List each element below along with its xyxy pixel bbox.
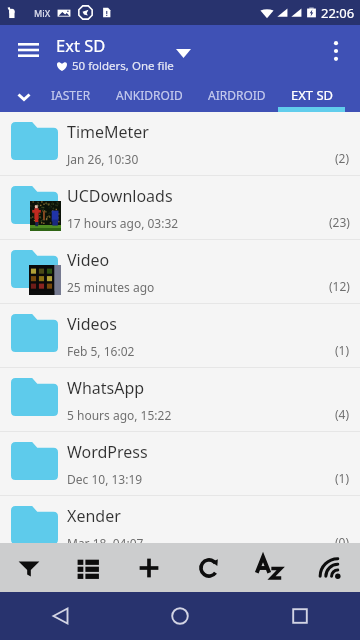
button[interactable]: More options bbox=[312, 25, 360, 77]
staticText: (1) bbox=[335, 342, 350, 358]
button[interactable]: Open navigation drawer bbox=[0, 25, 56, 77]
staticText: (1) bbox=[335, 470, 350, 486]
button[interactable]: Xender bbox=[0, 496, 360, 560]
staticText: WordPress bbox=[67, 441, 148, 463]
staticText: TimeMeter bbox=[67, 121, 149, 143]
button[interactable]: Sort bbox=[240, 543, 298, 592]
staticText: EXT SD bbox=[291, 86, 334, 104]
button[interactable]: UCDownloads bbox=[0, 176, 360, 240]
staticText: (23) bbox=[329, 214, 350, 230]
staticText: (2) bbox=[335, 150, 350, 166]
button[interactable]: EXT SD bbox=[291, 82, 334, 112]
staticText: (12) bbox=[329, 278, 350, 294]
staticText: Ext SD bbox=[56, 34, 106, 56]
staticText: Jan 26, 10:30 bbox=[67, 151, 139, 167]
staticText: (4) bbox=[335, 406, 350, 422]
button[interactable]: Recents bbox=[240, 592, 360, 640]
button[interactable]: New bbox=[120, 543, 178, 592]
staticText: MiX bbox=[34, 7, 51, 19]
button[interactable]: AIRDROID bbox=[208, 82, 266, 112]
staticText: AIRDROID bbox=[208, 87, 266, 103]
staticText: (0) bbox=[335, 534, 350, 550]
staticText: Videos bbox=[67, 313, 117, 335]
staticText: Video bbox=[67, 249, 110, 271]
staticText: 50 folders, One file bbox=[72, 58, 174, 74]
button[interactable]: Back bbox=[0, 592, 120, 640]
button[interactable]: WordPress bbox=[0, 432, 360, 496]
staticText: Mar 18, 04:07 bbox=[67, 535, 144, 551]
button[interactable]: IASTER bbox=[51, 82, 91, 112]
staticText: IASTER bbox=[51, 87, 91, 103]
staticText: 17 hours ago, 03:32 bbox=[67, 215, 179, 231]
button[interactable]: Refresh bbox=[180, 543, 238, 592]
button[interactable]: ANKIDROID bbox=[116, 82, 183, 112]
staticText: 25 minutes ago bbox=[67, 279, 155, 295]
staticText: Dec 10, 13:19 bbox=[67, 471, 143, 487]
button[interactable]: Video bbox=[0, 240, 360, 304]
staticText: UCDownloads bbox=[67, 185, 173, 207]
button[interactable]: Show all tabs bbox=[0, 82, 48, 112]
button[interactable]: Videos bbox=[0, 304, 360, 368]
button[interactable]: Home bbox=[120, 592, 240, 640]
staticText: Feb 5, 16:02 bbox=[67, 343, 135, 359]
staticText: 5 hours ago, 15:22 bbox=[67, 407, 172, 423]
button[interactable]: Change view bbox=[59, 543, 117, 592]
staticText: Xender bbox=[67, 505, 121, 527]
staticText: WhatsApp bbox=[67, 377, 145, 399]
staticText: ANKIDROID bbox=[116, 87, 183, 103]
button[interactable]: WhatsApp bbox=[0, 368, 360, 432]
staticText: 22:06 bbox=[321, 4, 355, 22]
button[interactable]: Filter bbox=[0, 543, 58, 592]
button[interactable]: TimeMeter bbox=[0, 112, 360, 176]
button[interactable]: Change folder bbox=[166, 38, 200, 68]
button[interactable]: Network bbox=[301, 543, 359, 592]
